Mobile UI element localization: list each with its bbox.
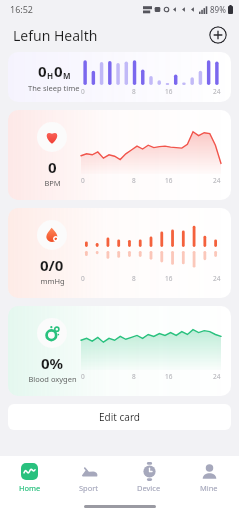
- button[interactable]: Edit card: [8, 404, 231, 430]
- button[interactable]: Home: [0, 456, 59, 500]
- staticText: The sleep time: [28, 83, 80, 93]
- staticText: 0: [38, 61, 47, 81]
- staticText: Home: [19, 483, 41, 493]
- staticText: 16: [165, 176, 173, 185]
- button[interactable]: 0%: [8, 306, 231, 396]
- staticText: 24: [213, 87, 221, 96]
- button[interactable]: 0: [8, 52, 231, 102]
- staticText: 0/0: [40, 255, 64, 275]
- staticText: 89%: [210, 4, 226, 15]
- staticText: 16: [165, 274, 173, 283]
- staticText: M: [63, 70, 71, 81]
- staticText: 0: [48, 157, 57, 177]
- button[interactable]: 0/0: [8, 208, 231, 298]
- button[interactable]: Sport: [59, 456, 119, 500]
- button[interactable]: 0: [8, 110, 231, 200]
- staticText: Device: [137, 483, 161, 493]
- staticText: 0: [81, 372, 85, 381]
- staticText: 0: [81, 274, 85, 283]
- staticText: Edit card: [99, 410, 140, 424]
- staticText: 16: [165, 372, 173, 381]
- staticText: 8: [132, 87, 136, 96]
- staticText: 16: [165, 87, 173, 96]
- staticText: 8: [132, 274, 136, 283]
- button[interactable]: Add card: [209, 26, 227, 44]
- staticText: BPM: [44, 178, 61, 188]
- staticText: H: [47, 70, 54, 81]
- staticText: 8: [132, 372, 136, 381]
- staticText: 24: [213, 372, 221, 381]
- staticText: Blood oxygen: [28, 374, 77, 384]
- staticText: 16:52: [10, 3, 34, 15]
- staticText: 0: [54, 61, 63, 81]
- staticText: Lefun Health: [13, 26, 98, 45]
- staticText: Sport: [79, 483, 99, 493]
- staticText: 24: [213, 176, 221, 185]
- staticText: Mine: [200, 483, 218, 493]
- staticText: 0: [81, 176, 85, 185]
- staticText: 24: [213, 274, 221, 283]
- button[interactable]: Device: [119, 456, 179, 500]
- staticText: mmHg: [40, 276, 65, 286]
- staticText: 0%: [41, 353, 64, 373]
- button[interactable]: Mine: [179, 456, 239, 500]
- staticText: 8: [132, 176, 136, 185]
- staticText: 0: [81, 87, 85, 96]
